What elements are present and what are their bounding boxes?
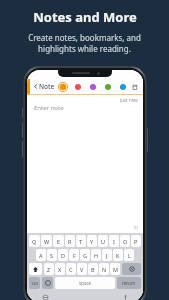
button[interactable]: A: [36, 249, 46, 261]
staticText: K: [116, 252, 120, 259]
staticText: return: [122, 280, 136, 286]
button[interactable]: M: [110, 263, 120, 275]
staticText: R: [68, 238, 72, 245]
button[interactable]: Color: [118, 82, 128, 92]
staticText: Notes and More: [33, 8, 137, 26]
staticText: L: [128, 252, 131, 259]
button[interactable]: Shift: [29, 263, 42, 275]
button[interactable]: Z: [44, 263, 54, 275]
button[interactable]: L: [124, 249, 134, 261]
staticText: N: [102, 266, 107, 273]
button[interactable]: 123: [29, 277, 40, 289]
staticText: C: [69, 266, 73, 273]
button[interactable]: E: [53, 235, 64, 247]
button[interactable]: F: [69, 249, 79, 261]
button[interactable]: D: [58, 249, 68, 261]
staticText: Enter note: [34, 104, 64, 112]
staticText: M: [113, 266, 118, 273]
button[interactable]: W: [41, 235, 52, 247]
button[interactable]: J: [102, 249, 112, 261]
staticText: V: [80, 266, 84, 273]
staticText: F: [73, 252, 76, 259]
staticText: J: [106, 252, 108, 259]
button[interactable]: Selected color: [57, 81, 68, 92]
button[interactable]: Keyboard language: [41, 293, 49, 300]
staticText: Z: [47, 266, 51, 273]
button[interactable]: return: [117, 277, 141, 289]
staticText: P: [134, 238, 138, 245]
button[interactable]: Delete note: [130, 82, 140, 92]
button[interactable]: K: [113, 249, 123, 261]
button[interactable]: N: [99, 263, 109, 275]
button[interactable]: T: [76, 235, 86, 247]
staticText: Note: [39, 82, 55, 91]
staticText: G: [83, 252, 88, 259]
button[interactable]: U: [98, 235, 108, 247]
button[interactable]: space: [55, 277, 115, 289]
staticText: space: [79, 280, 92, 286]
staticText: W: [44, 238, 50, 245]
staticText: Q: [32, 238, 37, 245]
button[interactable]: Backspace: [122, 263, 141, 275]
button[interactable]: C: [66, 263, 76, 275]
button[interactable]: X: [55, 263, 65, 275]
button[interactable]: R: [65, 235, 75, 247]
staticText: H: [94, 252, 99, 259]
button[interactable]: V: [77, 263, 87, 275]
staticText: O: [123, 238, 128, 245]
button[interactable]: G: [80, 249, 90, 261]
button[interactable]: Color: [73, 82, 83, 92]
staticText: Create notes, bookmarks, and highlights …: [28, 32, 141, 54]
button[interactable]: Color: [103, 82, 113, 92]
button[interactable]: Emoji: [42, 277, 53, 289]
button[interactable]: S: [47, 249, 57, 261]
button[interactable]: P: [131, 235, 141, 247]
button[interactable]: Note: [33, 82, 55, 91]
staticText: E: [57, 238, 61, 245]
staticText: X: [58, 266, 62, 273]
button[interactable]: Color: [88, 82, 98, 92]
staticText: 123: [31, 281, 38, 286]
staticText: D: [61, 252, 66, 259]
button[interactable]: Q: [29, 235, 40, 247]
staticText: A: [39, 252, 43, 259]
button[interactable]: Dictate: [121, 293, 129, 300]
staticText: I: [113, 238, 115, 245]
staticText: U: [101, 238, 106, 245]
button[interactable]: H: [91, 249, 101, 261]
button[interactable]: O: [120, 235, 130, 247]
button[interactable]: B: [88, 263, 98, 275]
staticText: T: [79, 238, 83, 245]
button[interactable]: I: [109, 235, 119, 247]
staticText: B: [91, 266, 95, 273]
staticText: S: [50, 252, 54, 259]
staticText: Y: [90, 238, 94, 245]
staticText: just now: [120, 97, 138, 103]
button[interactable]: Y: [87, 235, 97, 247]
